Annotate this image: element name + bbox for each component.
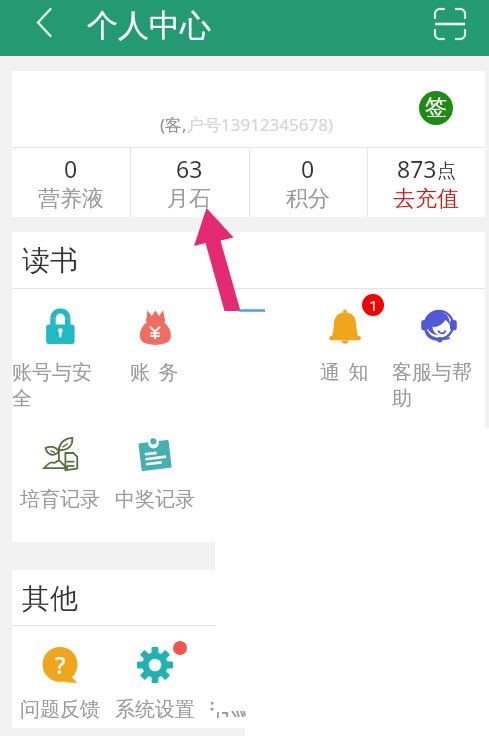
button[interactable] (249, 148, 367, 217)
staticText: 873 (397, 153, 437, 184)
button[interactable]: 签 (419, 91, 453, 125)
staticText: 1 (369, 295, 378, 315)
staticText: 中奖记录 (115, 487, 195, 512)
button[interactable]: 账务 (107, 289, 202, 416)
button[interactable] (12, 148, 130, 217)
staticText: 读书 (22, 243, 78, 278)
staticText: 通知 (320, 360, 378, 385)
staticText: 账务 (130, 360, 188, 385)
button[interactable]: 账号与安全 (12, 289, 107, 416)
staticText: 账号与安全 (12, 360, 107, 411)
button[interactable]: ? (12, 626, 107, 728)
button[interactable]: 客服与帮助 (392, 289, 485, 416)
button[interactable]: 中奖记录 (107, 416, 202, 542)
staticText: 月石 (167, 185, 211, 213)
staticText: 问题反馈 (20, 697, 100, 722)
staticText: 积分 (286, 185, 330, 213)
button[interactable]: 1 (297, 289, 392, 416)
staticText: 0 (301, 153, 315, 184)
button[interactable]: Scan (430, 4, 470, 44)
staticText: 其他 (22, 581, 78, 616)
staticText: 63 (176, 153, 203, 184)
button[interactable]: 培育记录 (12, 416, 107, 542)
staticText: 营养液 (38, 185, 104, 213)
staticText: 去充值 (393, 185, 459, 213)
staticText: (客, (160, 113, 187, 136)
staticText: 户号13912345678) (187, 113, 334, 136)
staticText: 个人中心 (87, 6, 211, 45)
button[interactable]: Back (22, 9, 62, 45)
staticText: ? (55, 649, 66, 680)
staticText: 系统设置 (115, 697, 195, 722)
button[interactable] (367, 148, 485, 217)
staticText: 客服与帮助 (392, 360, 485, 411)
staticText: 签 (425, 94, 447, 122)
button[interactable]: 系统设置 (107, 626, 202, 728)
staticText: 培育记录 (20, 487, 100, 512)
staticText: 点 (437, 159, 456, 183)
button[interactable] (130, 148, 248, 217)
staticText: 0 (64, 153, 78, 184)
